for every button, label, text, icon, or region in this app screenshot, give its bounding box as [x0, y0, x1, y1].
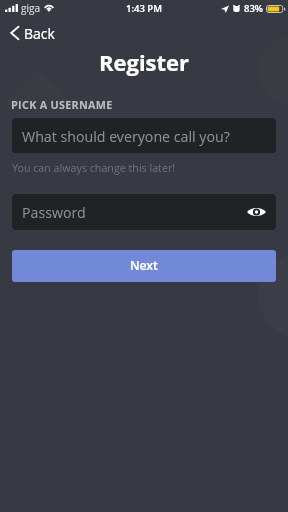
staticText: 1:43 PM: [126, 2, 162, 15]
staticText: Password: [22, 203, 86, 222]
staticText: What should everyone call you?: [22, 127, 230, 146]
button[interactable]: Next: [12, 250, 276, 282]
button[interactable]: What should everyone call you?: [12, 118, 276, 153]
staticText: giga: [21, 1, 41, 15]
staticText: You can always change this later!: [12, 161, 176, 176]
staticText: Next: [130, 257, 158, 274]
button[interactable]: Back: [10, 24, 55, 42]
staticText: PICK A USERNAME: [11, 97, 113, 112]
button[interactable]: Password: [12, 194, 276, 230]
button[interactable]: Show password: [243, 199, 269, 225]
staticText: Register: [0, 47, 288, 77]
staticText: Back: [24, 24, 55, 42]
staticText: 83%: [244, 2, 264, 15]
